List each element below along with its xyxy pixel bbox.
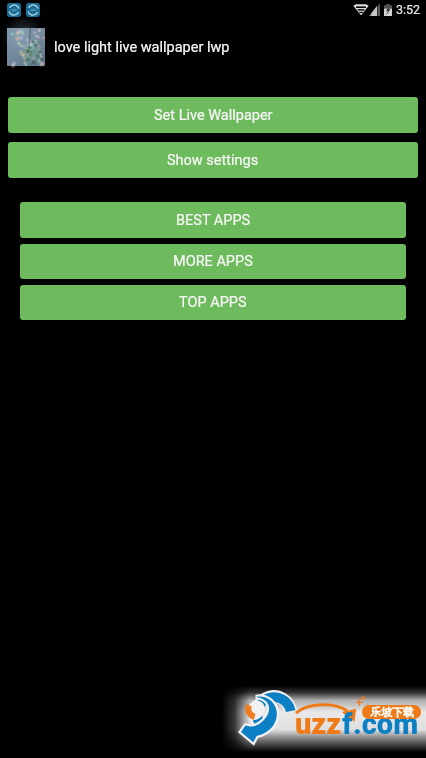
staticText: 乐坡下载	[370, 705, 414, 719]
staticText: 3:52	[396, 2, 421, 17]
staticText: uzz	[295, 707, 342, 741]
staticText: f	[342, 707, 353, 741]
button[interactable]: Show settings	[8, 142, 418, 178]
staticText: TOP APPS	[179, 294, 247, 311]
staticText: love light live wallpaper lwp	[54, 39, 230, 56]
button[interactable]: BEST APPS	[20, 202, 406, 238]
button[interactable]: MORE APPS	[20, 244, 406, 279]
staticText: BEST APPS	[176, 212, 251, 229]
staticText: MORE APPS	[173, 253, 253, 270]
staticText: Set Live Wallpaper	[154, 107, 273, 124]
button[interactable]: Set Live Wallpaper	[8, 97, 418, 133]
staticText: Show settings	[167, 152, 259, 169]
staticText: .com	[353, 707, 419, 741]
button[interactable]: TOP APPS	[20, 285, 406, 320]
